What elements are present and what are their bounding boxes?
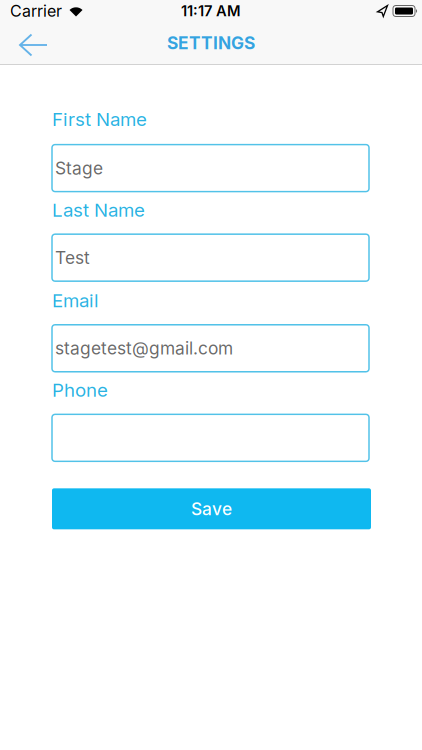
button[interactable]: Save: [52, 488, 371, 529]
staticText: Save: [191, 498, 232, 519]
button[interactable]: Phone: [52, 414, 369, 461]
button[interactable]: Test: [52, 234, 369, 281]
staticText: Test: [55, 247, 90, 268]
staticText: Stage: [55, 158, 103, 179]
button[interactable]: Back: [0, 24, 47, 62]
staticText: Phone: [52, 379, 108, 401]
button[interactable]: Stage: [52, 145, 369, 192]
staticText: Email: [52, 289, 99, 312]
staticText: SETTINGS: [167, 32, 255, 53]
button[interactable]: stagetest@gmail.com: [52, 325, 369, 372]
staticText: 11:17 AM: [181, 2, 241, 20]
staticText: stagetest@gmail.com: [55, 338, 233, 359]
staticText: Last Name: [52, 199, 145, 221]
staticText: First Name: [52, 108, 147, 131]
staticText: Carrier: [10, 1, 62, 21]
